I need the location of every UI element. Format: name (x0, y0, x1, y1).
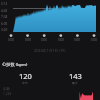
staticText: 7:34 (1, 15, 8, 19)
staticText: 0:00 (38, 38, 50, 42)
staticText: 0:00 (5, 38, 17, 42)
staticText: 0:00 (71, 38, 83, 42)
staticText: 4:45 (1, 9, 8, 13)
staticText: 0:00 (88, 38, 100, 42)
staticText: 歩数 (3, 87, 11, 92)
staticText: 1,234 (3, 92, 12, 96)
staticText: 5:12 (1, 2, 8, 6)
staticText: 120 (19, 71, 32, 81)
staticText: 0:00 (55, 38, 67, 42)
staticText: 143 (69, 71, 82, 81)
staticText: 最大 (72, 81, 78, 85)
staticText: 2024年1月1日 (月) (34, 48, 66, 53)
staticText: 3:20 (1, 28, 8, 32)
staticText: 0:00 (22, 38, 34, 42)
staticText: 平均 (22, 81, 28, 85)
staticText: 心拍数 (bpm) (2, 62, 28, 68)
staticText: 6:05 (1, 22, 8, 26)
